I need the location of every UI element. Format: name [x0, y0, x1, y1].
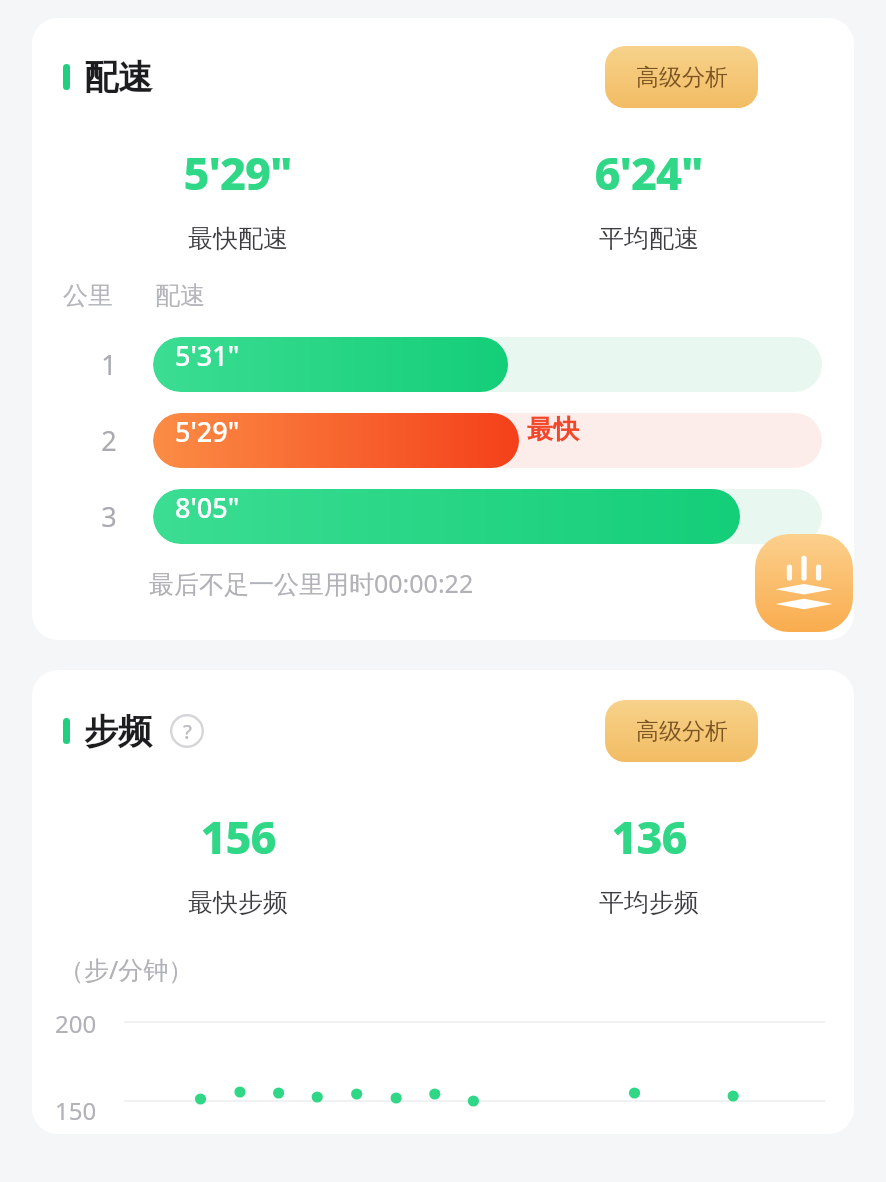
staticText: 8'05" — [175, 489, 240, 526]
staticText: 最快 — [527, 413, 579, 446]
button[interactable]: 高级分析 — [605, 46, 758, 108]
staticText: 最后不足一公里用时00:00:22 — [149, 566, 474, 600]
button[interactable]: Help about cadence — [170, 714, 204, 748]
staticText: ? — [183, 718, 192, 745]
staticText: 配速 — [84, 56, 152, 99]
staticText: 高级分析 — [636, 717, 728, 746]
button[interactable]: 3 — [32, 489, 854, 544]
staticText: 最快步频 — [188, 887, 288, 918]
staticText: 高级分析 — [636, 63, 728, 92]
staticText: 156 — [200, 806, 276, 867]
staticText: 5'29" — [183, 142, 292, 203]
staticText: 200 — [55, 1007, 97, 1040]
staticText: 步频 — [84, 710, 152, 753]
staticText: （步/分钟） — [59, 952, 194, 986]
staticText: 136 — [611, 806, 687, 867]
staticText: 平均配速 — [599, 223, 699, 254]
button[interactable]: 1 — [32, 337, 854, 392]
button[interactable]: Layers — [755, 534, 853, 632]
staticText: 5'31" — [175, 337, 240, 374]
staticText: 6'24" — [594, 142, 703, 203]
staticText: 1 — [101, 346, 117, 383]
staticText: 150 — [55, 1094, 97, 1127]
staticText: 公里 — [63, 280, 113, 311]
staticText: 配速 — [155, 280, 205, 311]
staticText: 平均步频 — [599, 887, 699, 918]
staticText: 2 — [101, 422, 117, 459]
button[interactable]: 高级分析 — [605, 700, 758, 762]
button[interactable]: 2 — [32, 413, 854, 468]
staticText: 最快配速 — [188, 223, 288, 254]
staticText: 3 — [101, 498, 117, 535]
staticText: 5'29" — [175, 413, 240, 450]
